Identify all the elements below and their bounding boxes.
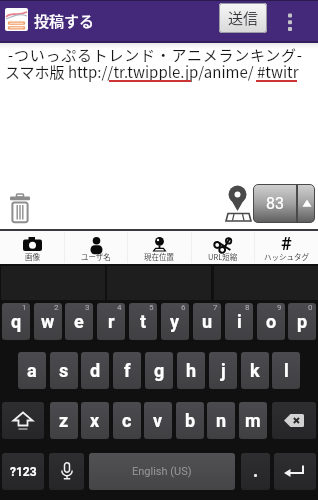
button[interactable]: o bbox=[257, 303, 285, 340]
staticText: b bbox=[185, 410, 196, 431]
button[interactable]: URL短縮 bbox=[191, 231, 255, 264]
button[interactable]: ユーザ名 bbox=[64, 231, 128, 264]
staticText: a bbox=[27, 360, 37, 381]
button[interactable]: y bbox=[161, 303, 189, 340]
staticText: u bbox=[202, 311, 213, 332]
staticText: h bbox=[186, 360, 197, 381]
staticText: i bbox=[237, 311, 242, 332]
staticText: 現在位置 bbox=[144, 251, 174, 262]
staticText: t bbox=[140, 311, 147, 332]
staticText: y bbox=[170, 311, 180, 332]
button[interactable] bbox=[9, 194, 31, 223]
staticText: -ついっぷるトレンド・アニメランキング- bbox=[8, 44, 303, 66]
button[interactable]: j bbox=[209, 352, 237, 389]
staticText: o bbox=[266, 311, 277, 332]
button[interactable]: s bbox=[50, 352, 78, 389]
staticText: m bbox=[245, 410, 261, 431]
staticText: j bbox=[221, 360, 226, 381]
button[interactable]: b bbox=[176, 402, 204, 439]
staticText: p bbox=[297, 311, 308, 332]
staticText: 3 bbox=[85, 303, 90, 312]
button[interactable]: d bbox=[81, 352, 109, 389]
staticText: ユーザ名 bbox=[81, 251, 111, 262]
button[interactable]: l bbox=[272, 352, 300, 389]
button[interactable] bbox=[2, 402, 44, 439]
button[interactable]: English (US) bbox=[89, 453, 235, 490]
staticText: w bbox=[41, 311, 55, 332]
button[interactable]: e bbox=[65, 303, 93, 340]
button[interactable] bbox=[272, 402, 316, 439]
button[interactable]: a bbox=[18, 352, 46, 389]
staticText: 8 bbox=[245, 303, 250, 312]
staticText: r bbox=[108, 311, 115, 332]
staticText: 送信 bbox=[228, 7, 259, 29]
button[interactable]: c bbox=[113, 402, 141, 439]
staticText: g bbox=[154, 360, 165, 381]
button[interactable]: h bbox=[177, 352, 205, 389]
button[interactable]: 送信 bbox=[219, 3, 267, 33]
button[interactable]: t bbox=[129, 303, 157, 340]
button[interactable]: u bbox=[193, 303, 221, 340]
button[interactable]: ?123 bbox=[2, 453, 44, 490]
button[interactable] bbox=[282, 0, 304, 43]
staticText: f bbox=[124, 360, 131, 381]
button[interactable]: g bbox=[145, 352, 173, 389]
button[interactable]: 現在位置 bbox=[127, 231, 191, 264]
staticText: ?123 bbox=[10, 465, 37, 479]
button[interactable]: # bbox=[254, 231, 318, 264]
button[interactable]: m bbox=[239, 402, 267, 439]
button[interactable]: p bbox=[288, 303, 316, 340]
staticText: z bbox=[59, 410, 69, 431]
staticText: e bbox=[74, 311, 84, 332]
button[interactable]: f bbox=[113, 352, 141, 389]
button[interactable] bbox=[226, 185, 251, 222]
staticText: 1 bbox=[22, 303, 27, 312]
button[interactable]: r bbox=[97, 303, 125, 340]
button[interactable]: v bbox=[144, 402, 172, 439]
staticText: 9 bbox=[277, 303, 282, 312]
staticText: 6 bbox=[181, 303, 186, 312]
button[interactable]: n bbox=[207, 402, 235, 439]
staticText: v bbox=[153, 410, 163, 431]
button[interactable]: w bbox=[34, 303, 62, 340]
button[interactable]: i bbox=[225, 303, 253, 340]
button[interactable] bbox=[274, 453, 316, 490]
button[interactable] bbox=[49, 453, 84, 490]
button[interactable] bbox=[241, 453, 270, 490]
staticText: d bbox=[90, 360, 101, 381]
button[interactable]: 83 bbox=[253, 184, 315, 223]
staticText: n bbox=[216, 410, 227, 431]
button[interactable]: z bbox=[50, 402, 78, 439]
staticText: 2 bbox=[54, 303, 59, 312]
button[interactable]: q bbox=[2, 303, 30, 340]
staticText: x bbox=[90, 410, 100, 431]
staticText: c bbox=[122, 410, 132, 431]
staticText: ハッシュタグ bbox=[264, 251, 309, 262]
staticText: 画像 bbox=[25, 251, 40, 262]
staticText: 0 bbox=[308, 303, 313, 312]
staticText: スマホ版 http://tr.twipple.jp/anime/ #twitr bbox=[5, 61, 299, 83]
staticText: 投稿する bbox=[34, 10, 95, 32]
staticText: 83 bbox=[266, 194, 284, 213]
staticText: URL短縮 bbox=[208, 251, 238, 262]
button[interactable]: k bbox=[241, 352, 269, 389]
staticText: 7 bbox=[213, 303, 218, 312]
staticText: # bbox=[281, 233, 292, 254]
staticText: English (US) bbox=[132, 465, 192, 478]
staticText: l bbox=[284, 360, 289, 381]
staticText: 5 bbox=[149, 303, 154, 312]
staticText: q bbox=[11, 311, 22, 332]
button[interactable]: 画像 bbox=[0, 231, 64, 264]
staticText: s bbox=[59, 360, 69, 381]
button[interactable]: x bbox=[81, 402, 109, 439]
staticText: 4 bbox=[117, 303, 122, 312]
staticText: k bbox=[250, 360, 260, 381]
